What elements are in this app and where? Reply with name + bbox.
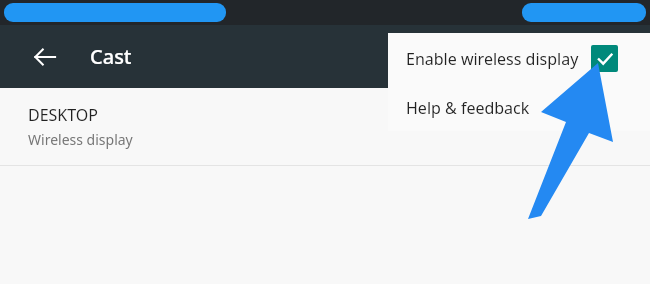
- staticText: Help & feedback: [406, 97, 530, 119]
- staticText: DESKTOP: [28, 104, 99, 126]
- staticText: Enable wireless display: [406, 48, 579, 70]
- button[interactable]: Back: [24, 25, 66, 88]
- button[interactable]: DESKTOP: [0, 88, 650, 165]
- button[interactable]: Enabled: [591, 45, 618, 72]
- button[interactable]: Enable wireless display: [388, 33, 650, 84]
- button[interactable]: Help & feedback: [388, 84, 650, 131]
- staticText: Cast: [90, 43, 132, 70]
- staticText: Wireless display: [28, 130, 133, 149]
